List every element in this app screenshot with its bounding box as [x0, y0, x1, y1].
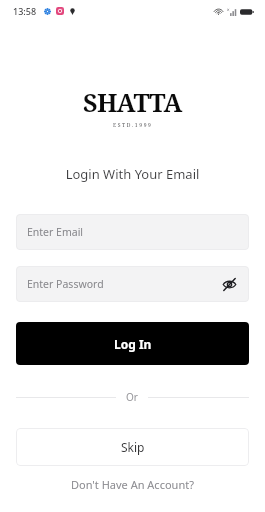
staticText: Enter Email: [27, 225, 84, 239]
staticText: Login With Your Email: [0, 165, 265, 183]
staticText: Enter Password: [27, 277, 104, 291]
staticText: 13:58: [13, 5, 37, 17]
button[interactable]: Don't Have An Account?: [0, 469, 265, 500]
staticText: Log In: [114, 336, 152, 352]
staticText: ESTD.1999: [113, 122, 153, 129]
staticText: Or: [126, 390, 138, 404]
button[interactable]: Skip: [16, 428, 249, 466]
staticText: Don't Have An Account?: [71, 477, 194, 492]
button[interactable]: Show password: [217, 272, 241, 296]
staticText: Skip: [121, 439, 145, 455]
staticText: SHATTA: [83, 85, 182, 119]
button[interactable]: Enter Email: [16, 214, 249, 250]
button[interactable]: Enter Password: [16, 266, 249, 302]
button[interactable]: Log In: [16, 322, 249, 365]
